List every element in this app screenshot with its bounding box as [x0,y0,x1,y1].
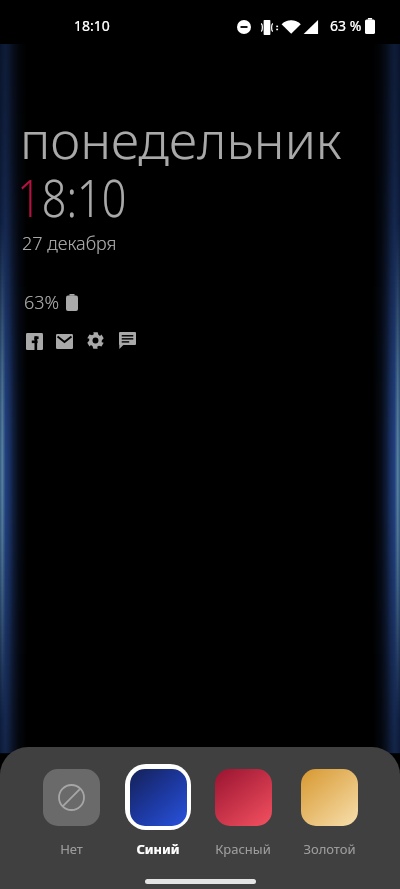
staticText: 1 [17,162,42,232]
staticText: 18:10 [74,16,110,35]
staticText: Синий [136,840,180,858]
staticText: Золотой [303,840,356,858]
staticText: Красный [215,840,271,858]
staticText: 8:10 [42,162,127,232]
staticText: понедельник [20,103,342,174]
button[interactable]: Синий [115,764,201,858]
button[interactable]: Красный [200,764,286,858]
button[interactable]: Нет [28,764,114,858]
staticText: Нет [60,840,83,858]
staticText: 63 % [330,16,362,35]
staticText: 63% [24,290,60,315]
staticText: 27 декабря [22,231,117,256]
button[interactable]: Золотой [286,764,372,858]
